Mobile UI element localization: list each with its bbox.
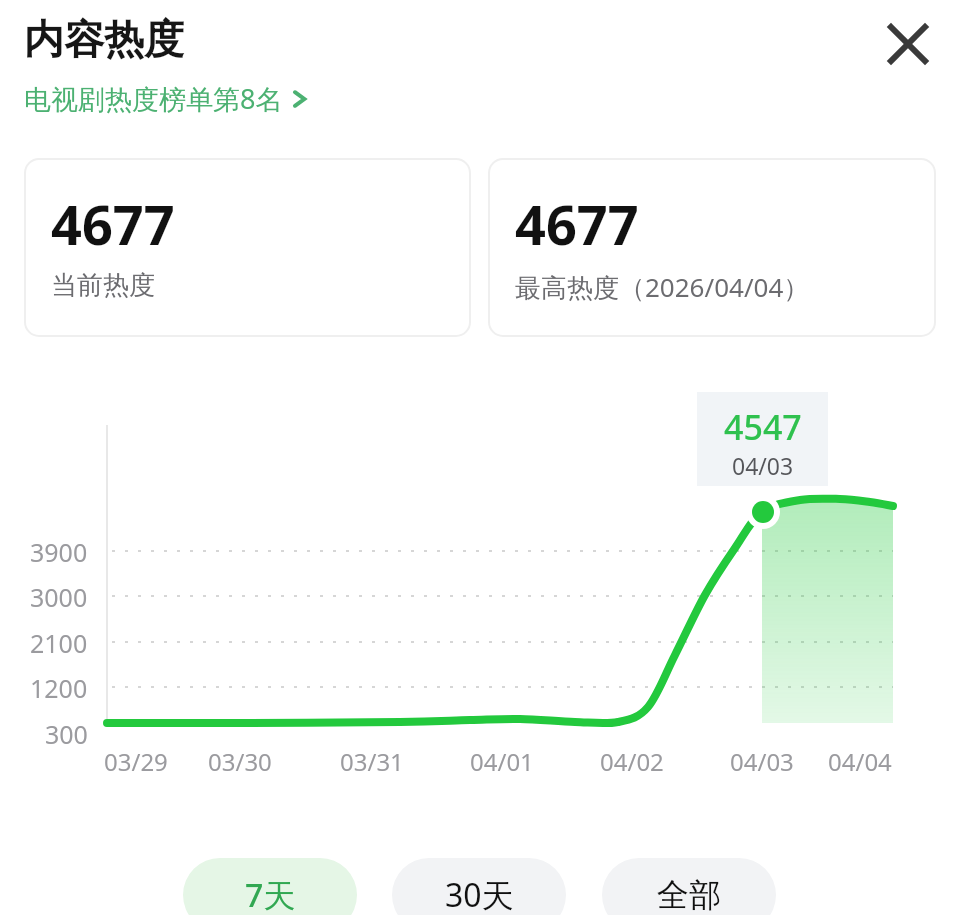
staticText: 2100 xyxy=(30,626,88,660)
staticText: 04/04 xyxy=(828,745,892,778)
staticText: 04/01 xyxy=(470,745,534,778)
button[interactable]: Close xyxy=(874,10,942,78)
staticText: 7天 xyxy=(245,873,296,915)
staticText: 4547 xyxy=(724,404,802,450)
staticText: 4677 xyxy=(515,187,639,261)
button[interactable]: 7天 xyxy=(183,858,357,915)
staticText: 03/30 xyxy=(208,745,272,778)
staticText: 04/03 xyxy=(732,450,794,481)
staticText: 最高热度（2026/04/04） xyxy=(515,269,810,305)
button[interactable]: 4677 xyxy=(25,159,470,336)
button[interactable]: 全部 xyxy=(602,858,776,915)
staticText: 3000 xyxy=(30,580,88,614)
staticText: 03/31 xyxy=(340,745,404,778)
staticText: 电视剧热度榜单第8名 xyxy=(24,80,283,117)
button[interactable]: 电视剧热度榜单第8名 xyxy=(24,80,309,117)
staticText: 300 xyxy=(45,717,88,751)
staticText: 内容热度 xyxy=(24,14,184,64)
button[interactable]: 4677 xyxy=(489,159,935,336)
staticText: 30天 xyxy=(445,873,514,915)
staticText: 全部 xyxy=(657,875,721,915)
staticText: 4677 xyxy=(51,187,175,261)
staticText: 1200 xyxy=(30,671,88,705)
staticText: 03/29 xyxy=(104,745,168,778)
button[interactable]: 30天 xyxy=(392,858,566,915)
staticText: 当前热度 xyxy=(51,269,155,302)
staticText: 04/03 xyxy=(730,745,794,778)
staticText: 04/02 xyxy=(600,745,664,778)
staticText: 3900 xyxy=(30,535,88,569)
